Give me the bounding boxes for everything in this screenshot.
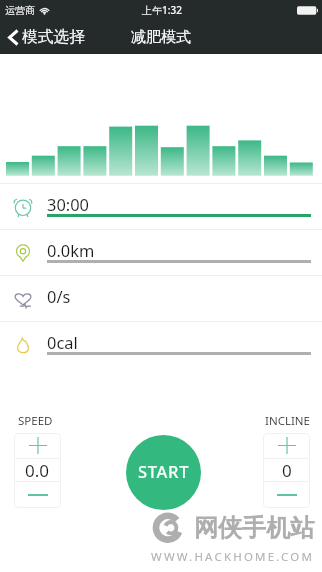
staticText: 0/s: [47, 285, 71, 307]
staticText: 运营商: [5, 4, 35, 17]
button[interactable]: 0.0km: [0, 229, 322, 275]
staticText: 0: [282, 459, 292, 481]
button[interactable]: 0/s: [0, 275, 322, 321]
staticText: WWW.HACKHOME.COM: [151, 549, 315, 565]
staticText: 0.0: [25, 459, 50, 481]
staticText: 0.0km: [47, 239, 95, 261]
staticText: INCLINE: [265, 413, 310, 429]
staticText: 减肥模式: [131, 28, 191, 47]
button[interactable]: START: [126, 435, 201, 510]
staticText: 网侠手机站: [194, 513, 314, 543]
staticText: 上午1:32: [142, 3, 182, 17]
button[interactable]: 模式选择: [0, 20, 96, 54]
button[interactable]: Decrease: [14, 482, 61, 507]
button[interactable]: 0cal: [0, 321, 322, 367]
button[interactable]: 30:00: [0, 183, 322, 229]
button[interactable]: Increase: [263, 433, 310, 458]
staticText: START: [138, 460, 190, 482]
staticText: 0cal: [47, 331, 78, 353]
staticText: 模式选择: [22, 27, 86, 47]
staticText: SPEED: [18, 413, 53, 429]
button[interactable]: Increase: [14, 433, 61, 458]
staticText: 30:00: [47, 193, 89, 215]
button[interactable]: Decrease: [263, 482, 310, 507]
